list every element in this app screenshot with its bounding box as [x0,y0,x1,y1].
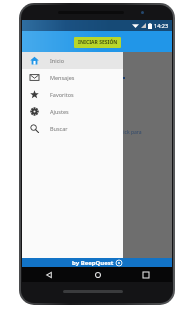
staticText: Inicio [50,57,65,64]
staticText: Ajustes [50,108,69,115]
button[interactable]: Mensajes [22,69,123,86]
button[interactable]: INICIAR SESIÓN [74,37,121,48]
button[interactable]: by BeepQuest [22,258,172,267]
button[interactable]: Buscar [22,120,123,137]
button[interactable]: Recents [139,268,152,281]
staticText: Mensajes [50,74,75,81]
staticText: lick para [122,129,142,136]
staticText: by BeepQuest [72,259,114,267]
button[interactable]: Back [42,268,55,281]
staticText: INICIAR SESIÓN [78,39,118,46]
button[interactable]: Ajustes [22,103,123,120]
button[interactable]: Inicio [22,52,123,69]
button[interactable]: Home [91,268,104,281]
staticText: Buscar [50,125,68,132]
button[interactable]: Favoritos [22,86,123,103]
staticText: 14:23 [154,22,169,29]
staticText: Favoritos [50,91,74,98]
